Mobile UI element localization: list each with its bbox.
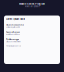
staticText: Make an Update bbox=[24, 5, 39, 8]
staticText: Lorem ipsum dolor bbox=[6, 18, 25, 20]
staticText: adipiscing elit sed do bbox=[6, 26, 20, 28]
staticText: Mobile Series Program bbox=[19, 2, 45, 5]
staticText: Veniam quis nostrud bbox=[6, 45, 21, 47]
staticText: incididunt ut labore bbox=[6, 33, 20, 35]
staticText: aliqua ut enim ad minim bbox=[6, 41, 20, 43]
staticText: Et dolore magna bbox=[6, 38, 19, 41]
staticText: Sit amet consectetur bbox=[6, 24, 24, 26]
staticText: Eiusmod tempor bbox=[6, 31, 20, 33]
